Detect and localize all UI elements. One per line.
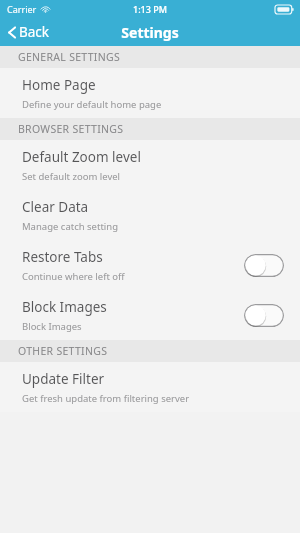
button[interactable]: Update Filter — [0, 362, 300, 412]
staticText: 1:13 PM — [133, 3, 167, 15]
staticText: Default Zoom level — [22, 148, 141, 166]
staticText: Block Images — [22, 320, 82, 333]
button[interactable]: Clear Data — [0, 190, 300, 240]
button[interactable]: Home Page — [0, 68, 300, 118]
button[interactable]: Default Zoom level — [0, 140, 300, 190]
button[interactable]: Block Images — [0, 290, 300, 340]
staticText: Back — [19, 23, 50, 41]
button[interactable]: Toggle — [244, 254, 284, 277]
staticText: Define your default home page — [22, 98, 162, 111]
staticText: Carrier — [7, 3, 37, 15]
button[interactable]: Back — [0, 18, 60, 46]
staticText: Block Images — [22, 298, 107, 316]
staticText: OTHER SETTINGS — [18, 344, 108, 358]
staticText: Set default zoom level — [22, 170, 121, 183]
button[interactable]: Restore Tabs — [0, 240, 300, 290]
staticText: Continue where left off — [22, 270, 125, 283]
staticText: Update Filter — [22, 370, 105, 388]
staticText: Get fresh update from filtering server — [22, 392, 190, 405]
staticText: GENERAL SETTINGS — [18, 50, 121, 64]
staticText: Restore Tabs — [22, 248, 103, 266]
staticText: Home Page — [22, 76, 96, 94]
staticText: Manage catch setting — [22, 220, 118, 233]
button[interactable]: Toggle — [244, 304, 284, 327]
staticText: Clear Data — [22, 198, 89, 216]
staticText: BROWSER SETTINGS — [18, 122, 124, 136]
staticText: Settings — [121, 23, 179, 42]
